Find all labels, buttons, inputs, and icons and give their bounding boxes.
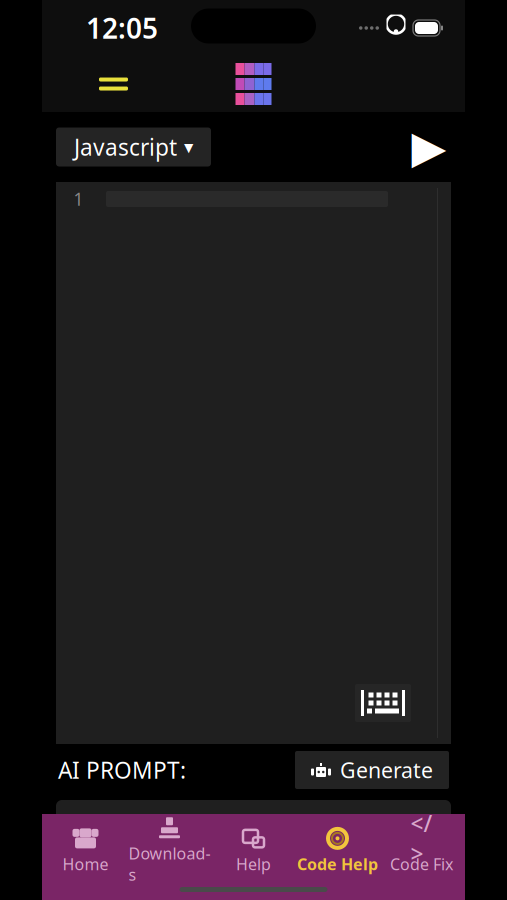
staticText: Home bbox=[62, 853, 108, 875]
button[interactable]: </> bbox=[379, 825, 463, 877]
staticText: Help bbox=[236, 853, 271, 875]
staticText: Code Fix bbox=[390, 853, 453, 875]
staticText: ▶ bbox=[411, 121, 446, 173]
button[interactable]: Generate bbox=[295, 751, 449, 789]
staticText: 12:05 bbox=[86, 9, 158, 47]
staticText: Javascript bbox=[74, 132, 177, 162]
staticText: </> bbox=[410, 808, 432, 868]
staticText: Generate bbox=[340, 756, 433, 784]
button[interactable]: Run code bbox=[409, 127, 449, 167]
staticText: ▾ bbox=[184, 136, 193, 158]
staticText: Downloads bbox=[128, 843, 210, 885]
button[interactable]: Toggle keyboard bbox=[355, 684, 411, 722]
button[interactable]: Code Help bbox=[295, 825, 379, 877]
button[interactable]: Help bbox=[211, 825, 295, 877]
staticText: Code Help bbox=[297, 853, 378, 875]
button[interactable]: Home bbox=[43, 825, 127, 877]
button[interactable]: Javascript bbox=[56, 127, 211, 166]
staticText: 1 bbox=[73, 187, 83, 210]
button[interactable]: Menu bbox=[89, 67, 138, 100]
button[interactable]: Downloads bbox=[127, 825, 211, 877]
staticText: AI PROMPT: bbox=[58, 755, 186, 785]
